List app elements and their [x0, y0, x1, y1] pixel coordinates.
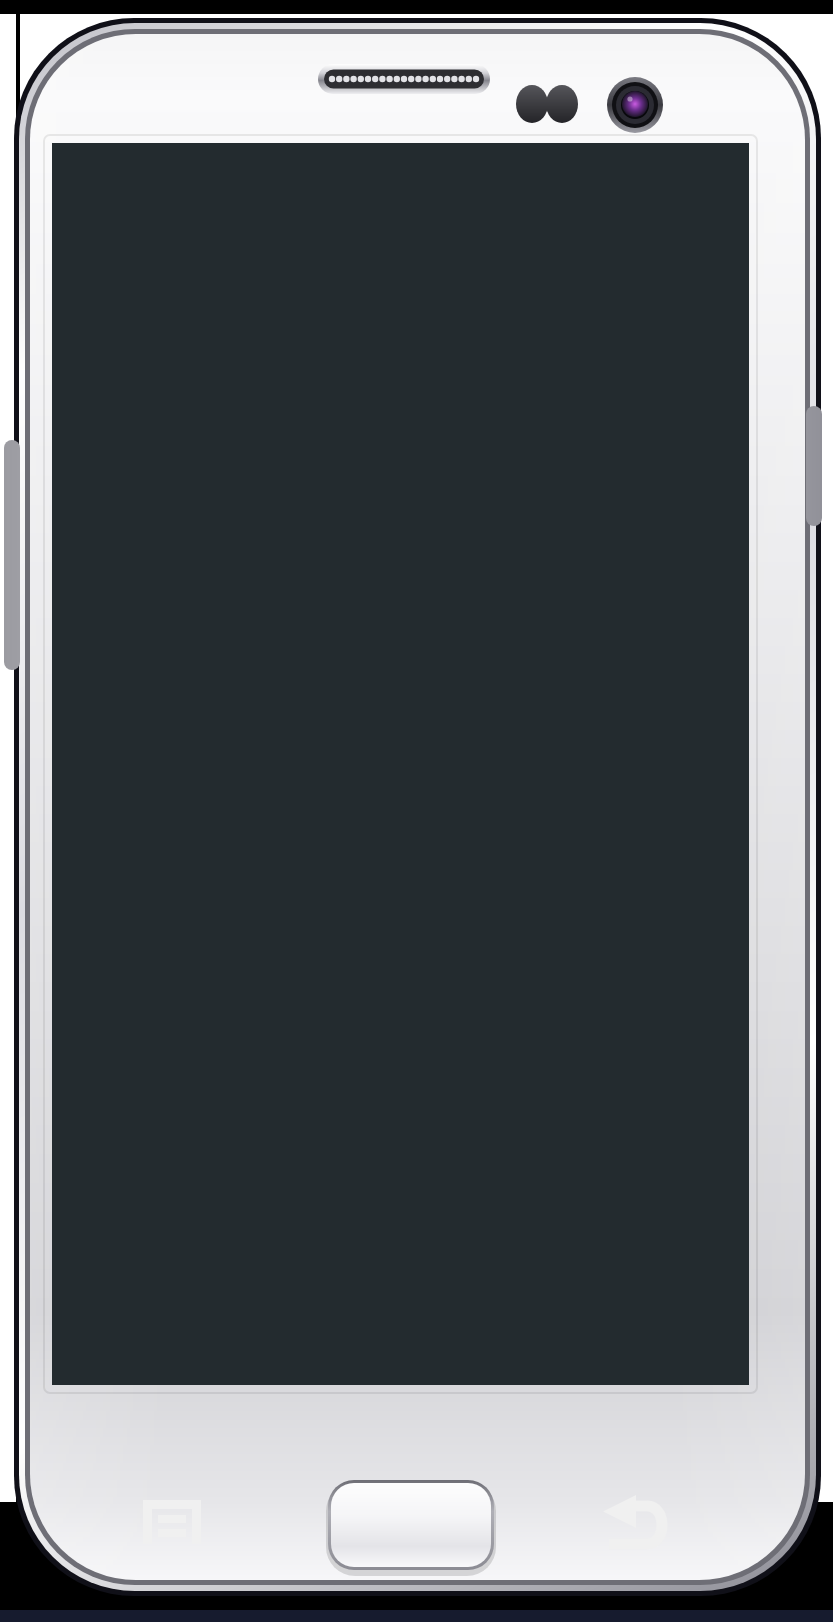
button[interactable]: Home [300, 1452, 496, 1556]
button[interactable]: Power [800, 400, 833, 530]
button[interactable]: Menu [128, 1462, 224, 1552]
button[interactable]: Back [588, 1462, 684, 1552]
button[interactable]: Volume [0, 430, 22, 670]
